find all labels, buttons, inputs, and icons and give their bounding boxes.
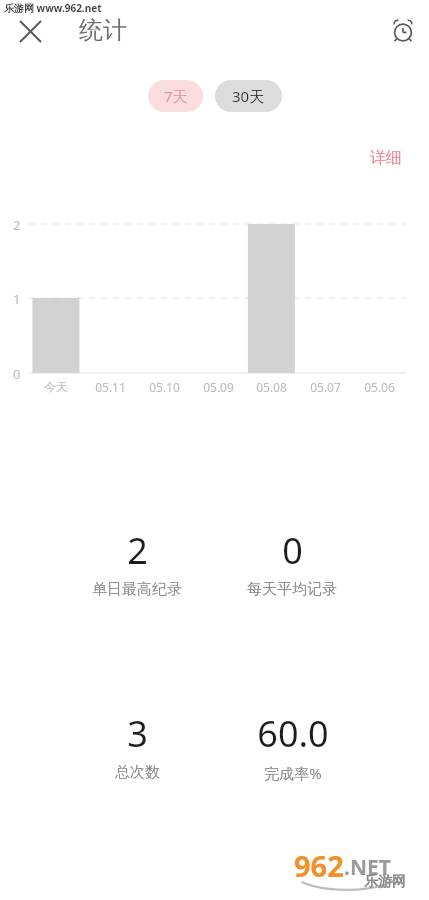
- staticText: 30天: [232, 86, 265, 106]
- staticText: 乐游网 www.962.net: [4, 1, 102, 15]
- button[interactable]: Alarm: [381, 9, 425, 53]
- button[interactable]: 2: [37, 526, 237, 599]
- staticText: 05.10: [149, 379, 180, 395]
- button[interactable]: 0: [192, 526, 392, 599]
- staticText: 7天: [164, 86, 188, 106]
- staticText: 每天平均记录: [247, 580, 337, 599]
- staticText: 05.11: [95, 379, 126, 395]
- button[interactable]: 60.0: [193, 709, 393, 783]
- button[interactable]: 详细: [360, 142, 412, 174]
- staticText: 乐游网: [364, 873, 406, 891]
- staticText: 总次数: [115, 763, 160, 782]
- staticText: 1: [13, 290, 21, 308]
- staticText: .NET: [344, 853, 391, 882]
- button[interactable]: 3: [37, 709, 237, 782]
- staticText: 05.09: [203, 379, 234, 395]
- button[interactable]: 30天: [215, 80, 282, 112]
- staticText: 05.06: [364, 379, 395, 395]
- staticText: 962: [294, 846, 344, 885]
- staticText: 0: [282, 526, 303, 575]
- button[interactable]: Close: [8, 9, 52, 53]
- staticText: 0: [13, 365, 21, 383]
- staticText: 05.07: [310, 379, 341, 395]
- button[interactable]: 7天: [148, 80, 203, 112]
- staticText: 60.0: [257, 709, 329, 758]
- staticText: 单日最高纪录: [92, 580, 182, 599]
- staticText: 详细: [370, 148, 402, 168]
- staticText: 今天: [44, 379, 68, 394]
- staticText: 2: [127, 526, 148, 575]
- staticText: 2: [13, 216, 21, 234]
- staticText: 05.08: [256, 379, 287, 395]
- staticText: 完成率%: [264, 763, 322, 783]
- staticText: 3: [127, 709, 148, 758]
- staticText: 统计: [79, 15, 127, 45]
